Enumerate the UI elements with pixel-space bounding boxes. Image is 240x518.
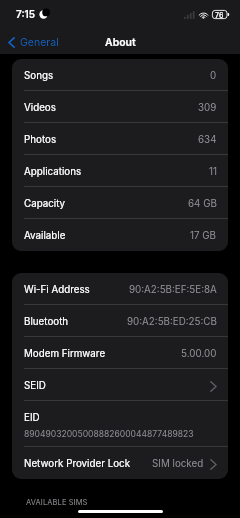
staticText: 76 — [215, 11, 224, 19]
staticText: Songs — [24, 70, 54, 82]
button[interactable]: General — [0, 31, 67, 54]
staticText: Wi-Fi Address — [24, 284, 90, 296]
staticText: 90:A2:5B:ED:25:CB — [127, 316, 217, 328]
button[interactable]: Network Provider Lock — [12, 447, 228, 479]
staticText: 64 GB — [188, 198, 217, 210]
staticText: 309 — [198, 102, 217, 114]
button[interactable]: SEID — [12, 369, 228, 401]
staticText: 89049032005008882600044877489823 — [24, 429, 194, 439]
button[interactable]: EID — [12, 401, 228, 447]
staticText: Available — [24, 230, 66, 242]
staticText: 5.00.00 — [181, 348, 217, 360]
staticText: Network Provider Lock — [24, 458, 131, 470]
staticText: 7:15 — [16, 8, 36, 20]
staticText: About — [105, 36, 136, 49]
staticText: Applications — [24, 166, 82, 178]
staticText: 17 GB — [190, 230, 217, 242]
staticText: EID — [24, 412, 40, 424]
staticText: AVAILABLE SIMS — [26, 498, 88, 507]
staticText: Capacity — [24, 198, 66, 210]
staticText: SIM locked — [152, 458, 204, 470]
staticText: Photos — [24, 134, 57, 146]
staticText: 634 — [198, 134, 217, 146]
staticText: 0 — [210, 70, 217, 82]
staticText: SEID — [24, 380, 46, 392]
staticText: Bluetooth — [24, 316, 69, 328]
staticText: 90:A2:5B:EF:5E:8A — [129, 284, 217, 296]
staticText: Videos — [24, 102, 56, 114]
staticText: General — [20, 36, 59, 49]
staticText: 11 — [209, 166, 217, 178]
staticText: Modem Firmware — [24, 348, 106, 360]
